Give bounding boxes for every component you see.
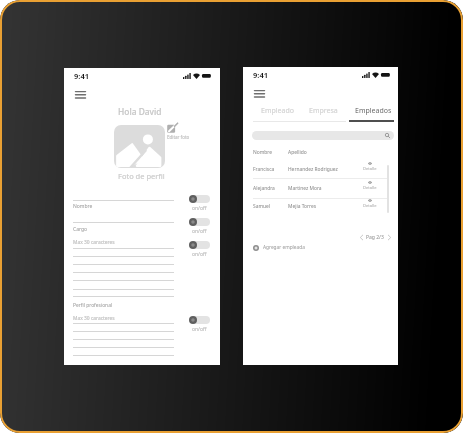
staticText: Editar foto bbox=[167, 134, 190, 140]
staticText: Martinez Mora bbox=[288, 185, 322, 192]
button[interactable]: Samuel bbox=[243, 201, 398, 215]
staticText: Max 30 caracteres bbox=[73, 315, 115, 322]
button[interactable]: Menu bbox=[75, 90, 86, 98]
button[interactable]: Pagina anterior bbox=[359, 234, 364, 241]
staticText: Hola David bbox=[118, 106, 162, 117]
button[interactable]: Buscar bbox=[252, 131, 394, 140]
button[interactable]: Editar foto bbox=[165, 122, 181, 134]
button[interactable]: Francisca bbox=[243, 164, 398, 178]
staticText: Empresa bbox=[309, 106, 338, 116]
button[interactable]: Foto de perfil bbox=[114, 125, 165, 168]
staticText: Detalle bbox=[363, 203, 377, 209]
staticText: Alejandra bbox=[253, 185, 275, 192]
staticText: Detalle bbox=[363, 166, 377, 172]
staticText: on/off bbox=[192, 251, 207, 258]
staticText: Apellido bbox=[288, 149, 307, 156]
staticText: Francisca bbox=[253, 166, 275, 173]
staticText: Pag 2/3 bbox=[366, 234, 384, 241]
button[interactable]: Alejandra bbox=[243, 183, 398, 197]
button[interactable]: on/off bbox=[189, 241, 210, 249]
staticText: on/off bbox=[192, 228, 207, 235]
button[interactable]: Pagina siguiente bbox=[387, 234, 392, 241]
staticText: Empleado bbox=[261, 106, 294, 116]
staticText: Cargo bbox=[73, 226, 88, 233]
staticText: Hernandez Rodriguez bbox=[288, 166, 338, 173]
staticText: Detalle bbox=[363, 185, 377, 191]
staticText: Agregar empleada bbox=[263, 244, 305, 251]
staticText: Nombre bbox=[73, 203, 93, 210]
button[interactable]: on/off bbox=[189, 218, 210, 226]
staticText: 9:41 bbox=[74, 71, 89, 81]
staticText: 9:41 bbox=[253, 70, 268, 80]
staticText: Perfil profesional bbox=[73, 302, 113, 309]
button[interactable]: Empleados bbox=[353, 104, 394, 118]
button[interactable]: Empresa bbox=[307, 104, 340, 118]
staticText: Samuel bbox=[253, 203, 271, 210]
button[interactable]: Menu bbox=[254, 89, 265, 97]
button[interactable]: Agregar empleada bbox=[253, 244, 305, 251]
staticText: Empleados bbox=[355, 106, 392, 116]
staticText: Nombre bbox=[253, 149, 272, 156]
staticText: Max 30 caracteres bbox=[73, 239, 115, 246]
button[interactable]: on/off bbox=[189, 316, 210, 324]
staticText: on/off bbox=[192, 205, 207, 212]
button[interactable]: on/off bbox=[189, 195, 210, 203]
staticText: on/off bbox=[192, 326, 207, 333]
button[interactable]: Empleado bbox=[259, 104, 296, 118]
button[interactable]: Nombre bbox=[243, 147, 398, 161]
staticText: Mejia Torres bbox=[288, 203, 317, 210]
staticText: Foto de perfil bbox=[118, 171, 165, 181]
